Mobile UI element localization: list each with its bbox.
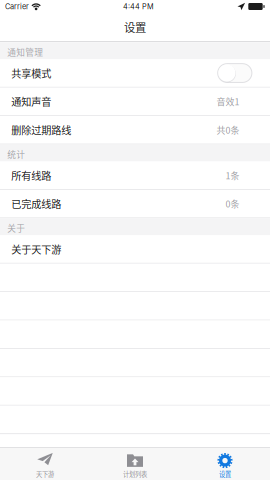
staticText: 设置 <box>219 469 231 479</box>
staticText: 4:44 PM <box>123 2 154 11</box>
staticText: 关于天下游 <box>11 242 61 256</box>
staticText: 共享模式 <box>11 66 51 80</box>
button[interactable]: 关于天下游 <box>0 235 270 264</box>
button[interactable]: 删除过期路线 <box>0 116 270 144</box>
button[interactable]: 已完成线路 <box>0 190 270 218</box>
staticText: 0条 <box>226 197 240 210</box>
button[interactable]: 计划列表 <box>90 448 180 480</box>
staticText: 音效1 <box>217 95 240 108</box>
button[interactable]: 所有线路 <box>0 161 270 190</box>
staticText: 天下游 <box>36 469 54 479</box>
staticText: 统计 <box>7 148 25 160</box>
button[interactable]: 天下游 <box>0 448 90 480</box>
staticText: 关于 <box>7 222 25 234</box>
staticText: 设置 <box>124 19 146 35</box>
staticText: 共0条 <box>217 123 240 136</box>
staticText: 1条 <box>226 169 240 182</box>
button[interactable]: 共享模式 <box>0 59 270 88</box>
staticText: 通知声音 <box>11 94 51 109</box>
staticText: Carrier <box>5 2 29 11</box>
staticText: 删除过期路线 <box>11 122 71 137</box>
staticText: 通知管理 <box>7 46 43 58</box>
staticText: 已完成线路 <box>11 196 61 211</box>
button[interactable]: 设置 <box>180 448 270 480</box>
button[interactable]: 通知声音 <box>0 88 270 116</box>
staticText: 所有线路 <box>11 168 51 183</box>
staticText: 计划列表 <box>123 469 147 479</box>
